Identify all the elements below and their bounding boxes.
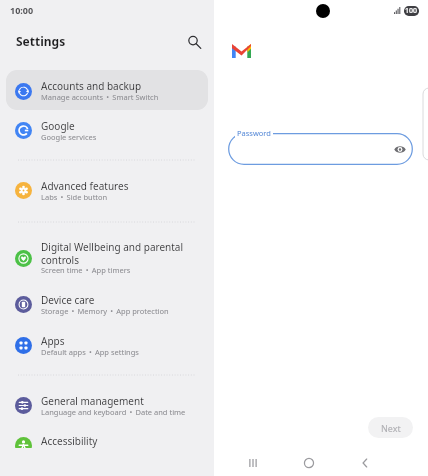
button[interactable]: Search (183, 31, 204, 52)
staticText: Screen time • App timers (41, 265, 131, 275)
staticText: Accounts and backup (41, 79, 142, 93)
button[interactable]: Digital Wellbeing and parental (6, 237, 208, 279)
button[interactable]: Next (368, 417, 413, 438)
staticText: General management (41, 394, 144, 408)
button[interactable]: Back (350, 448, 380, 476)
button[interactable]: Accessibility (6, 431, 208, 448)
button[interactable]: Accounts and backup (6, 76, 208, 106)
button[interactable]: Home (294, 448, 324, 476)
button[interactable]: Advanced features (6, 176, 208, 206)
staticText: Next (381, 422, 401, 434)
button[interactable]: Show password (391, 140, 409, 158)
button[interactable]: Google (6, 116, 208, 146)
staticText: Settings (16, 33, 66, 49)
staticText: Password (237, 128, 271, 138)
staticText: Google services (41, 132, 97, 142)
staticText: Device care (41, 293, 95, 307)
staticText: Default apps • App settings (41, 347, 139, 357)
staticText: controls (41, 253, 79, 267)
button[interactable] (6, 70, 208, 110)
button[interactable]: Apps (6, 331, 208, 361)
staticText: Apps (41, 334, 65, 348)
button[interactable]: Device care (6, 290, 208, 320)
button[interactable]: General management (6, 391, 208, 421)
staticText: Storage • Memory • App protection (41, 306, 169, 316)
staticText: Advanced features (41, 179, 129, 193)
staticText: Manage accounts • Smart Switch (41, 92, 159, 102)
staticText: Accessibility (41, 434, 98, 448)
staticText: 10:00 (10, 4, 34, 16)
staticText: Digital Wellbeing and parental (41, 240, 184, 254)
button[interactable]: Recents (238, 448, 268, 476)
staticText: 100 (405, 6, 418, 16)
staticText: Labs • Side button (41, 192, 108, 202)
staticText: Language and keyboard • Date and time (41, 407, 186, 417)
staticText: Google (41, 119, 75, 133)
